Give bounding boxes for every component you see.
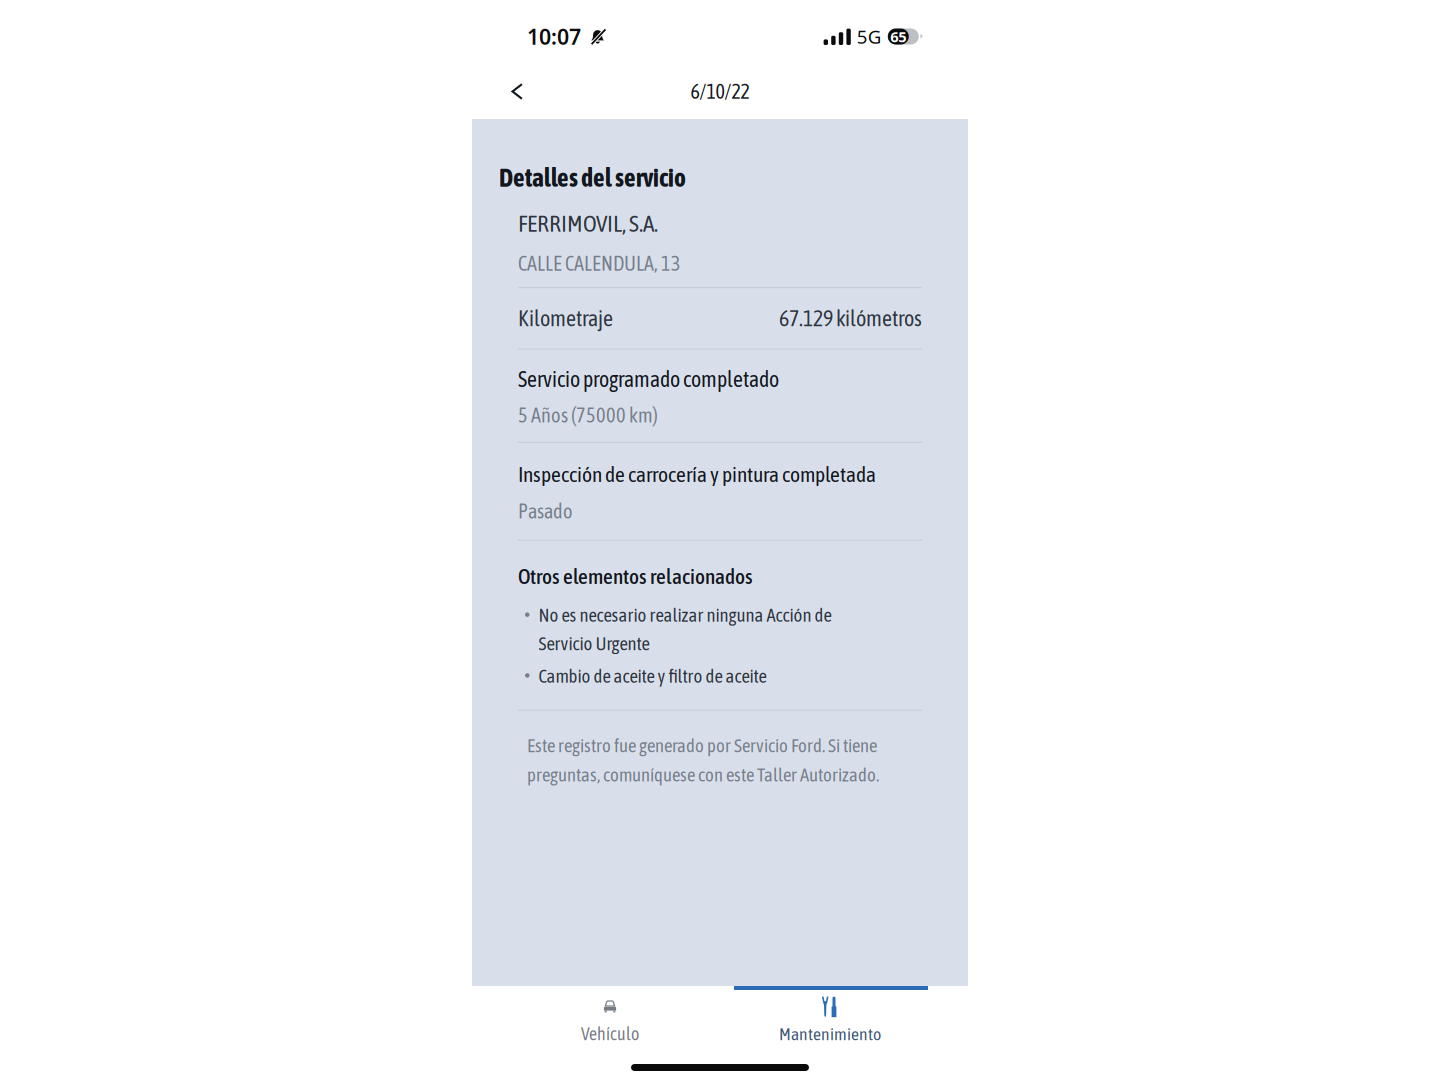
staticText: CALLE CALENDULA, 13 — [518, 252, 681, 275]
staticText: Inspección de carrocería y pintura compl… — [518, 462, 876, 486]
button[interactable]: Vehículo — [500, 990, 720, 1055]
staticText: Kilometraje — [518, 306, 613, 331]
staticText: Mantenimiento — [779, 1024, 881, 1044]
staticText: No es necesario realizar ninguna Acción … — [538, 604, 831, 654]
staticText: FERRIMOVIL, S.A. — [518, 210, 658, 237]
staticText: Este registro fue generado por Servicio … — [527, 735, 879, 786]
staticText: 6/10/22 — [690, 80, 749, 103]
staticText: Detalles del servicio — [499, 163, 686, 192]
button[interactable]: Back — [493, 70, 541, 119]
staticText: 5G — [857, 24, 882, 49]
button[interactable]: Mantenimiento — [720, 990, 940, 1055]
staticText: Pasado — [518, 499, 573, 523]
staticText: Cambio de aceite y filtro de aceite — [538, 665, 766, 687]
staticText: 67.129 kilómetros — [779, 306, 922, 331]
staticText: 10:07 — [527, 22, 581, 51]
staticText: 5 Años (75000 km) — [518, 403, 658, 427]
staticText: Servicio programado completado — [518, 367, 779, 391]
staticText: 65 — [890, 27, 906, 46]
staticText: Otros elementos relacionados — [518, 564, 753, 588]
staticText: Vehículo — [581, 1024, 639, 1044]
